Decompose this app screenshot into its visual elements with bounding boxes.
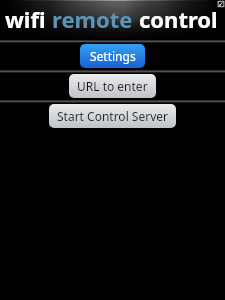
staticText: wifi [5, 4, 52, 34]
staticText: control [139, 4, 218, 34]
button[interactable]: Expand [217, 0, 225, 8]
staticText: URL to enter [77, 78, 148, 94]
button[interactable]: Start Control Server [49, 104, 176, 128]
button[interactable]: URL to enter [69, 74, 156, 98]
staticText: Settings [90, 48, 136, 64]
button[interactable]: Settings [80, 44, 145, 68]
staticText: remote [52, 4, 139, 34]
staticText: Start Control Server [57, 108, 168, 124]
